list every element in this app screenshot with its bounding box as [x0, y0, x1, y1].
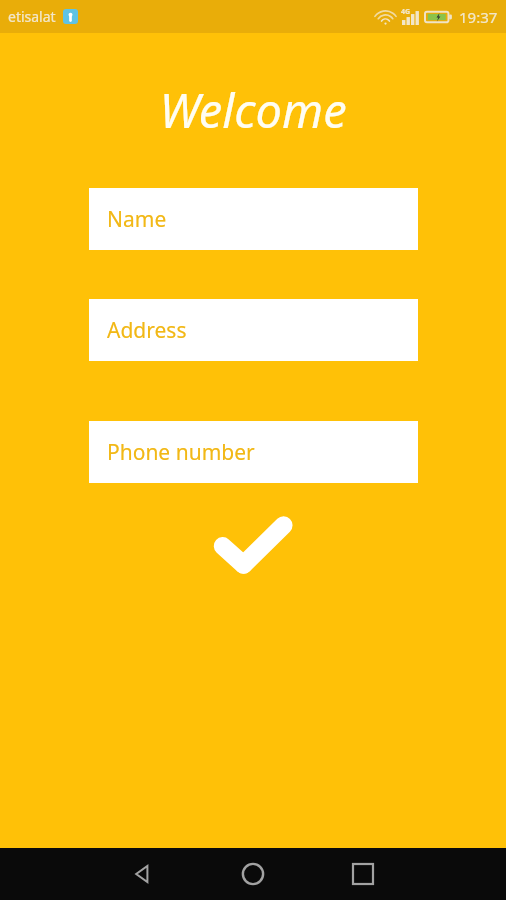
- button[interactable]: Home: [227, 848, 279, 900]
- staticText: Welcome: [159, 78, 347, 142]
- button[interactable]: Recents: [337, 848, 389, 900]
- button[interactable]: Name: [89, 188, 418, 250]
- button[interactable]: Address: [89, 299, 418, 361]
- button[interactable]: Back: [117, 848, 169, 900]
- button[interactable]: Submit: [214, 515, 292, 575]
- staticText: Name: [107, 205, 167, 234]
- staticText: Phone number: [107, 438, 255, 467]
- button[interactable]: Phone number: [89, 421, 418, 483]
- staticText: 4G: [401, 7, 411, 17]
- staticText: etisalat: [8, 7, 56, 26]
- staticText: 19:37: [459, 7, 498, 27]
- staticText: Address: [107, 316, 187, 345]
